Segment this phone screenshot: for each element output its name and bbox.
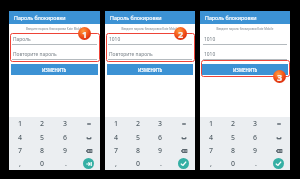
staticText: 4 — [18, 133, 23, 143]
staticText: 8 — [136, 146, 141, 156]
staticText: 5 — [231, 133, 236, 143]
button[interactable]: . — [149, 157, 172, 170]
staticText: 0 — [136, 159, 141, 169]
staticText: , — [115, 159, 117, 169]
button[interactable]: 7 — [105, 144, 127, 157]
button[interactable]: Space — [172, 131, 195, 144]
staticText: . — [255, 159, 257, 169]
button[interactable]: 5 — [127, 131, 149, 144]
button[interactable]: 2 — [31, 117, 54, 131]
staticText: 3 — [253, 119, 258, 129]
other: Backspace — [276, 148, 282, 154]
staticText: Пароль блокировки — [110, 14, 162, 21]
button[interactable]: 0 — [127, 157, 149, 170]
button[interactable]: 1010 — [203, 51, 287, 60]
button[interactable]: 4 — [105, 131, 127, 144]
staticText: ИЗМЕНИТЬ — [233, 67, 258, 73]
staticText: 8 — [231, 146, 236, 156]
button[interactable]: Dash — [172, 117, 195, 131]
button[interactable]: Done — [178, 158, 189, 169]
staticText: ИЗМЕНИТЬ — [138, 67, 163, 73]
button[interactable]: 9 — [149, 144, 172, 157]
button[interactable]: 1 — [9, 117, 31, 131]
button[interactable]: 4 — [9, 131, 31, 144]
staticText: 1010 — [204, 51, 216, 58]
staticText: Введите пароль блокировки Kate Mobile — [105, 27, 195, 31]
button[interactable]: 6 — [244, 131, 267, 144]
staticText: 3 — [158, 119, 163, 129]
other: Space — [181, 135, 187, 141]
staticText: . — [65, 159, 67, 169]
button[interactable]: Next — [83, 158, 94, 169]
staticText: Повторите пароль — [13, 51, 57, 58]
button[interactable]: . — [244, 157, 267, 170]
button[interactable]: 4 — [200, 131, 222, 144]
button[interactable]: Done — [267, 157, 290, 170]
button[interactable]: Done — [172, 157, 195, 170]
button[interactable]: Пароль блокировки — [105, 11, 195, 24]
staticText: . — [160, 159, 162, 169]
button[interactable]: Done — [273, 158, 284, 169]
button[interactable]: Backspace — [77, 144, 100, 157]
button[interactable]: 7 — [200, 144, 222, 157]
staticText: , — [19, 159, 21, 169]
button[interactable]: , — [200, 157, 222, 170]
staticText: Повторите пароль — [109, 51, 153, 58]
staticText: Пароль блокировки — [205, 14, 257, 21]
staticText: 3 — [277, 71, 283, 83]
button[interactable]: Space — [267, 131, 290, 144]
staticText: 9 — [253, 146, 258, 156]
button[interactable]: 3 — [149, 117, 172, 131]
staticText: 1010 — [204, 36, 216, 43]
button[interactable]: 0 — [222, 157, 244, 170]
button[interactable]: 1 — [105, 117, 127, 131]
button[interactable]: Пароль блокировки — [200, 11, 290, 24]
staticText: 1 — [209, 119, 214, 129]
button[interactable]: Dash — [77, 117, 100, 131]
button[interactable]: Space — [77, 131, 100, 144]
button[interactable]: 1 — [200, 117, 222, 131]
staticText: 5 — [136, 133, 141, 143]
staticText: 2 — [40, 119, 45, 129]
button[interactable]: , — [105, 157, 127, 170]
button[interactable]: Backspace — [267, 144, 290, 157]
button[interactable]: . — [54, 157, 77, 170]
button[interactable]: 7 — [9, 144, 31, 157]
button[interactable]: Пароль — [12, 36, 97, 45]
staticText: , — [210, 159, 212, 169]
button[interactable]: Повторите пароль — [108, 51, 192, 60]
button[interactable]: 8 — [127, 144, 149, 157]
staticText: Пароль — [13, 36, 31, 43]
button[interactable]: 9 — [244, 144, 267, 157]
staticText: 1 — [82, 28, 88, 40]
button[interactable]: Повторите пароль — [12, 51, 97, 60]
button[interactable]: Пароль блокировки — [9, 11, 100, 24]
staticText: 2 — [178, 28, 184, 40]
button[interactable]: 1010 — [203, 36, 287, 45]
staticText: 8 — [40, 146, 45, 156]
button[interactable]: 8 — [31, 144, 54, 157]
button[interactable]: 6 — [54, 131, 77, 144]
button[interactable]: 8 — [222, 144, 244, 157]
button[interactable]: 3 — [54, 117, 77, 131]
button[interactable]: , — [9, 157, 31, 170]
button[interactable]: 5 — [222, 131, 244, 144]
button[interactable]: Next — [77, 157, 100, 170]
other: Space — [86, 135, 92, 141]
button[interactable]: 2 — [222, 117, 244, 131]
button[interactable]: Dash — [267, 117, 290, 131]
button[interactable]: 3 — [244, 117, 267, 131]
other: Dash — [86, 121, 92, 127]
button[interactable]: Backspace — [172, 144, 195, 157]
staticText: 6 — [253, 133, 258, 143]
button[interactable]: ИЗМЕНИТЬ — [107, 64, 193, 75]
button[interactable]: ИЗМЕНИТЬ — [202, 64, 288, 75]
button[interactable]: 2 — [127, 117, 149, 131]
staticText: 1 — [114, 119, 119, 129]
button[interactable]: 1010 — [108, 36, 192, 45]
button[interactable]: ИЗМЕНИТЬ — [11, 64, 98, 75]
button[interactable]: 9 — [54, 144, 77, 157]
button[interactable]: 5 — [31, 131, 54, 144]
button[interactable]: 0 — [31, 157, 54, 170]
button[interactable]: 6 — [149, 131, 172, 144]
